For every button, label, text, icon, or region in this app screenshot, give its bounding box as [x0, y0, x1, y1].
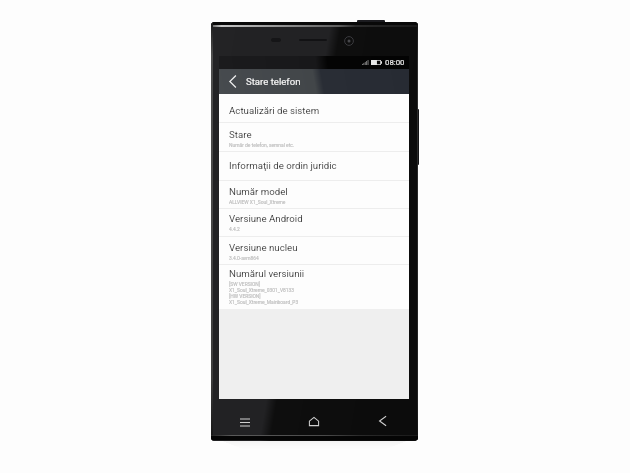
staticText: 3.4.0-avm864 — [229, 255, 259, 261]
staticText: 4.4.2 — [229, 226, 240, 232]
staticText: [HW VERSION] — [229, 293, 261, 299]
staticText: Numărul versiunii — [229, 268, 305, 279]
button[interactable]: Actualizări de sistem — [219, 94, 409, 123]
button[interactable]: Back — [219, 69, 246, 94]
staticText: ALLVIEW X1_Soul_Xtreme — [229, 199, 286, 205]
staticText: Versiune Android — [229, 213, 303, 224]
staticText: Versiune nucleu — [229, 242, 298, 253]
staticText: 08:00 — [385, 58, 405, 67]
button[interactable]: Număr model — [219, 181, 409, 209]
button[interactable]: Menu — [211, 399, 280, 441]
button[interactable]: Informaţii de ordin juridic — [219, 152, 409, 181]
staticText: Număr de telefon, semnal etc. — [229, 142, 295, 148]
button[interactable]: Stare — [219, 123, 409, 152]
button[interactable]: Versiune nucleu — [219, 237, 409, 265]
button[interactable]: Back — [349, 399, 418, 441]
button[interactable]: Versiune Android — [219, 209, 409, 237]
staticText: Actualizări de sistem — [229, 105, 320, 116]
staticText: X1_Soul_Xtreme_Mainboard_P3 — [229, 299, 299, 305]
button[interactable]: Numărul versiunii — [219, 265, 409, 309]
staticText: Stare — [229, 129, 252, 140]
staticText: Stare telefon — [246, 76, 301, 87]
staticText: Informaţii de ordin juridic — [229, 160, 337, 171]
staticText: X1_Soul_Xtreme_0301_V8133 — [229, 287, 295, 293]
staticText: [SW VERSION] — [229, 281, 261, 287]
button[interactable]: Home — [280, 399, 349, 441]
staticText: Număr model — [229, 186, 288, 197]
button[interactable]: Back — [219, 69, 409, 94]
